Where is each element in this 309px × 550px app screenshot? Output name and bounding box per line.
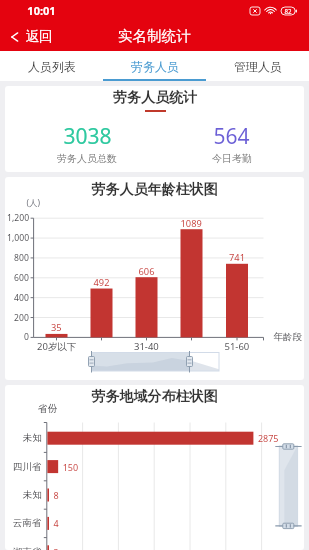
- staticText: 劳务人员统计: [113, 89, 197, 107]
- staticText: 今日考勤: [212, 152, 252, 165]
- staticText: 564: [213, 122, 250, 151]
- staticText: 劳务人员: [131, 59, 179, 74]
- staticText: 3038: [63, 122, 112, 151]
- staticText: 82: [284, 7, 292, 15]
- button[interactable]: 劳务人员: [103, 51, 206, 81]
- staticText: 返回: [25, 28, 53, 45]
- staticText: 10:01: [27, 3, 56, 18]
- staticText: 实名制统计: [118, 27, 191, 45]
- staticText: 劳务人员总数: [57, 152, 117, 165]
- button[interactable]: 3038: [15, 122, 159, 165]
- button[interactable]: 管理人员: [206, 51, 309, 81]
- button[interactable]: 返回: [0, 24, 59, 49]
- button[interactable]: 564: [159, 122, 304, 165]
- staticText: 人员列表: [28, 59, 76, 74]
- button[interactable]: 人员列表: [0, 51, 103, 81]
- staticText: 管理人员: [234, 59, 282, 74]
